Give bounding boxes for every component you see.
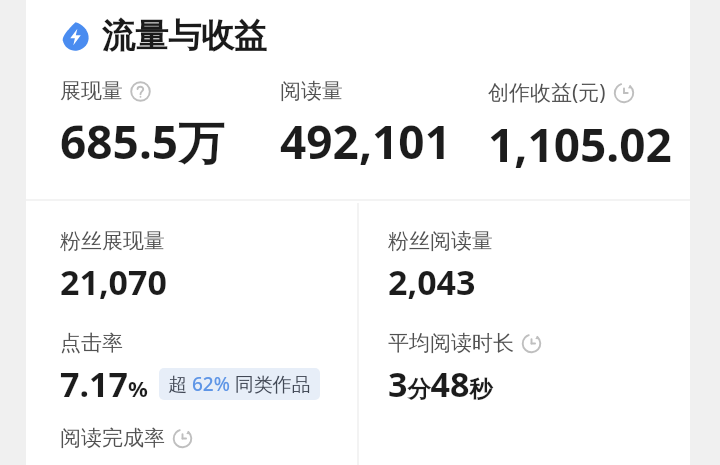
button[interactable]: 阅读量 xyxy=(280,78,451,173)
staticText: 阅读完成率 xyxy=(60,425,165,451)
staticText: 3分48秒 xyxy=(388,361,493,407)
button[interactable]: 展现量 xyxy=(60,78,225,173)
button[interactable]: 点击率 xyxy=(60,330,320,407)
staticText: 2,043 xyxy=(388,259,476,305)
button[interactable]: 粉丝阅读量 xyxy=(388,228,493,305)
staticText: 点击率 xyxy=(60,330,123,356)
other: 说明 xyxy=(130,81,151,102)
other: 延迟更新 xyxy=(172,428,193,449)
button[interactable]: 粉丝展现量 xyxy=(60,228,167,305)
other: 延迟更新 xyxy=(521,333,542,354)
button[interactable]: 平均阅读时长 xyxy=(388,330,542,407)
staticText: 阅读量 xyxy=(280,78,343,104)
staticText: 21,070 xyxy=(60,259,167,305)
other: 延迟更新 xyxy=(613,82,635,104)
button[interactable]: 超 62% 同类作品 xyxy=(168,371,311,397)
staticText: 创作收益(元) xyxy=(488,78,606,107)
staticText: 流量与收益 xyxy=(102,15,267,57)
button[interactable]: 流量 xyxy=(60,15,267,57)
staticText: 粉丝展现量 xyxy=(60,228,165,254)
other: 流量 xyxy=(60,21,91,52)
button[interactable]: 阅读完成率 xyxy=(60,425,193,456)
button[interactable]: 创作收益(元) xyxy=(488,78,672,176)
staticText: 7.17% xyxy=(60,361,148,407)
staticText: 超 62% 同类作品 xyxy=(168,371,311,397)
staticText: 1,105.02 xyxy=(488,113,672,176)
staticText: 685.5万 xyxy=(60,110,225,173)
staticText: 展现量 xyxy=(60,78,123,104)
staticText: 粉丝阅读量 xyxy=(388,228,493,254)
staticText: 平均阅读时长 xyxy=(388,330,514,356)
staticText: 492,101 xyxy=(280,110,451,173)
